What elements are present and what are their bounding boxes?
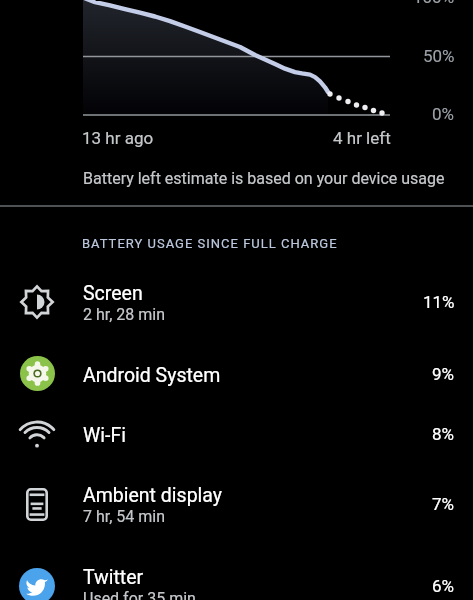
staticText: BATTERY USAGE SINCE FULL CHARGE <box>82 236 338 251</box>
staticText: 13 hr ago <box>82 128 154 148</box>
staticText: 4 hr left <box>333 128 391 148</box>
staticText: Wi-Fi <box>83 424 126 447</box>
other: Android System <box>20 356 55 391</box>
staticText: 100% <box>413 0 455 7</box>
staticText: Battery left estimate is based on your d… <box>83 169 445 188</box>
staticText: 6% <box>432 576 455 596</box>
staticText: Screen <box>83 282 143 305</box>
staticText: Ambient display <box>83 484 223 507</box>
staticText: 0% <box>432 104 455 124</box>
other: Twitter <box>19 568 55 600</box>
staticText: 2 hr, 28 min <box>83 305 166 324</box>
other: Ambient display <box>26 488 48 521</box>
staticText: Android System <box>83 364 221 387</box>
staticText: Used for 35 min <box>83 589 196 600</box>
staticText: 8% <box>432 424 455 444</box>
staticText: Twitter <box>83 566 144 589</box>
button[interactable]: Android System <box>0 343 473 404</box>
staticText: 50% <box>423 46 455 66</box>
button[interactable]: Screen <box>0 261 473 343</box>
staticText: 11% <box>423 292 455 312</box>
button[interactable]: Wi-Fi <box>0 404 473 463</box>
button[interactable]: Ambient display <box>0 463 473 545</box>
staticText: 9% <box>432 364 455 384</box>
staticText: 7% <box>432 494 455 514</box>
other: Screen <box>20 285 54 319</box>
button[interactable]: Twitter <box>0 545 473 600</box>
staticText: 7 hr, 54 min <box>83 507 166 526</box>
other: Wi-Fi <box>19 420 55 448</box>
